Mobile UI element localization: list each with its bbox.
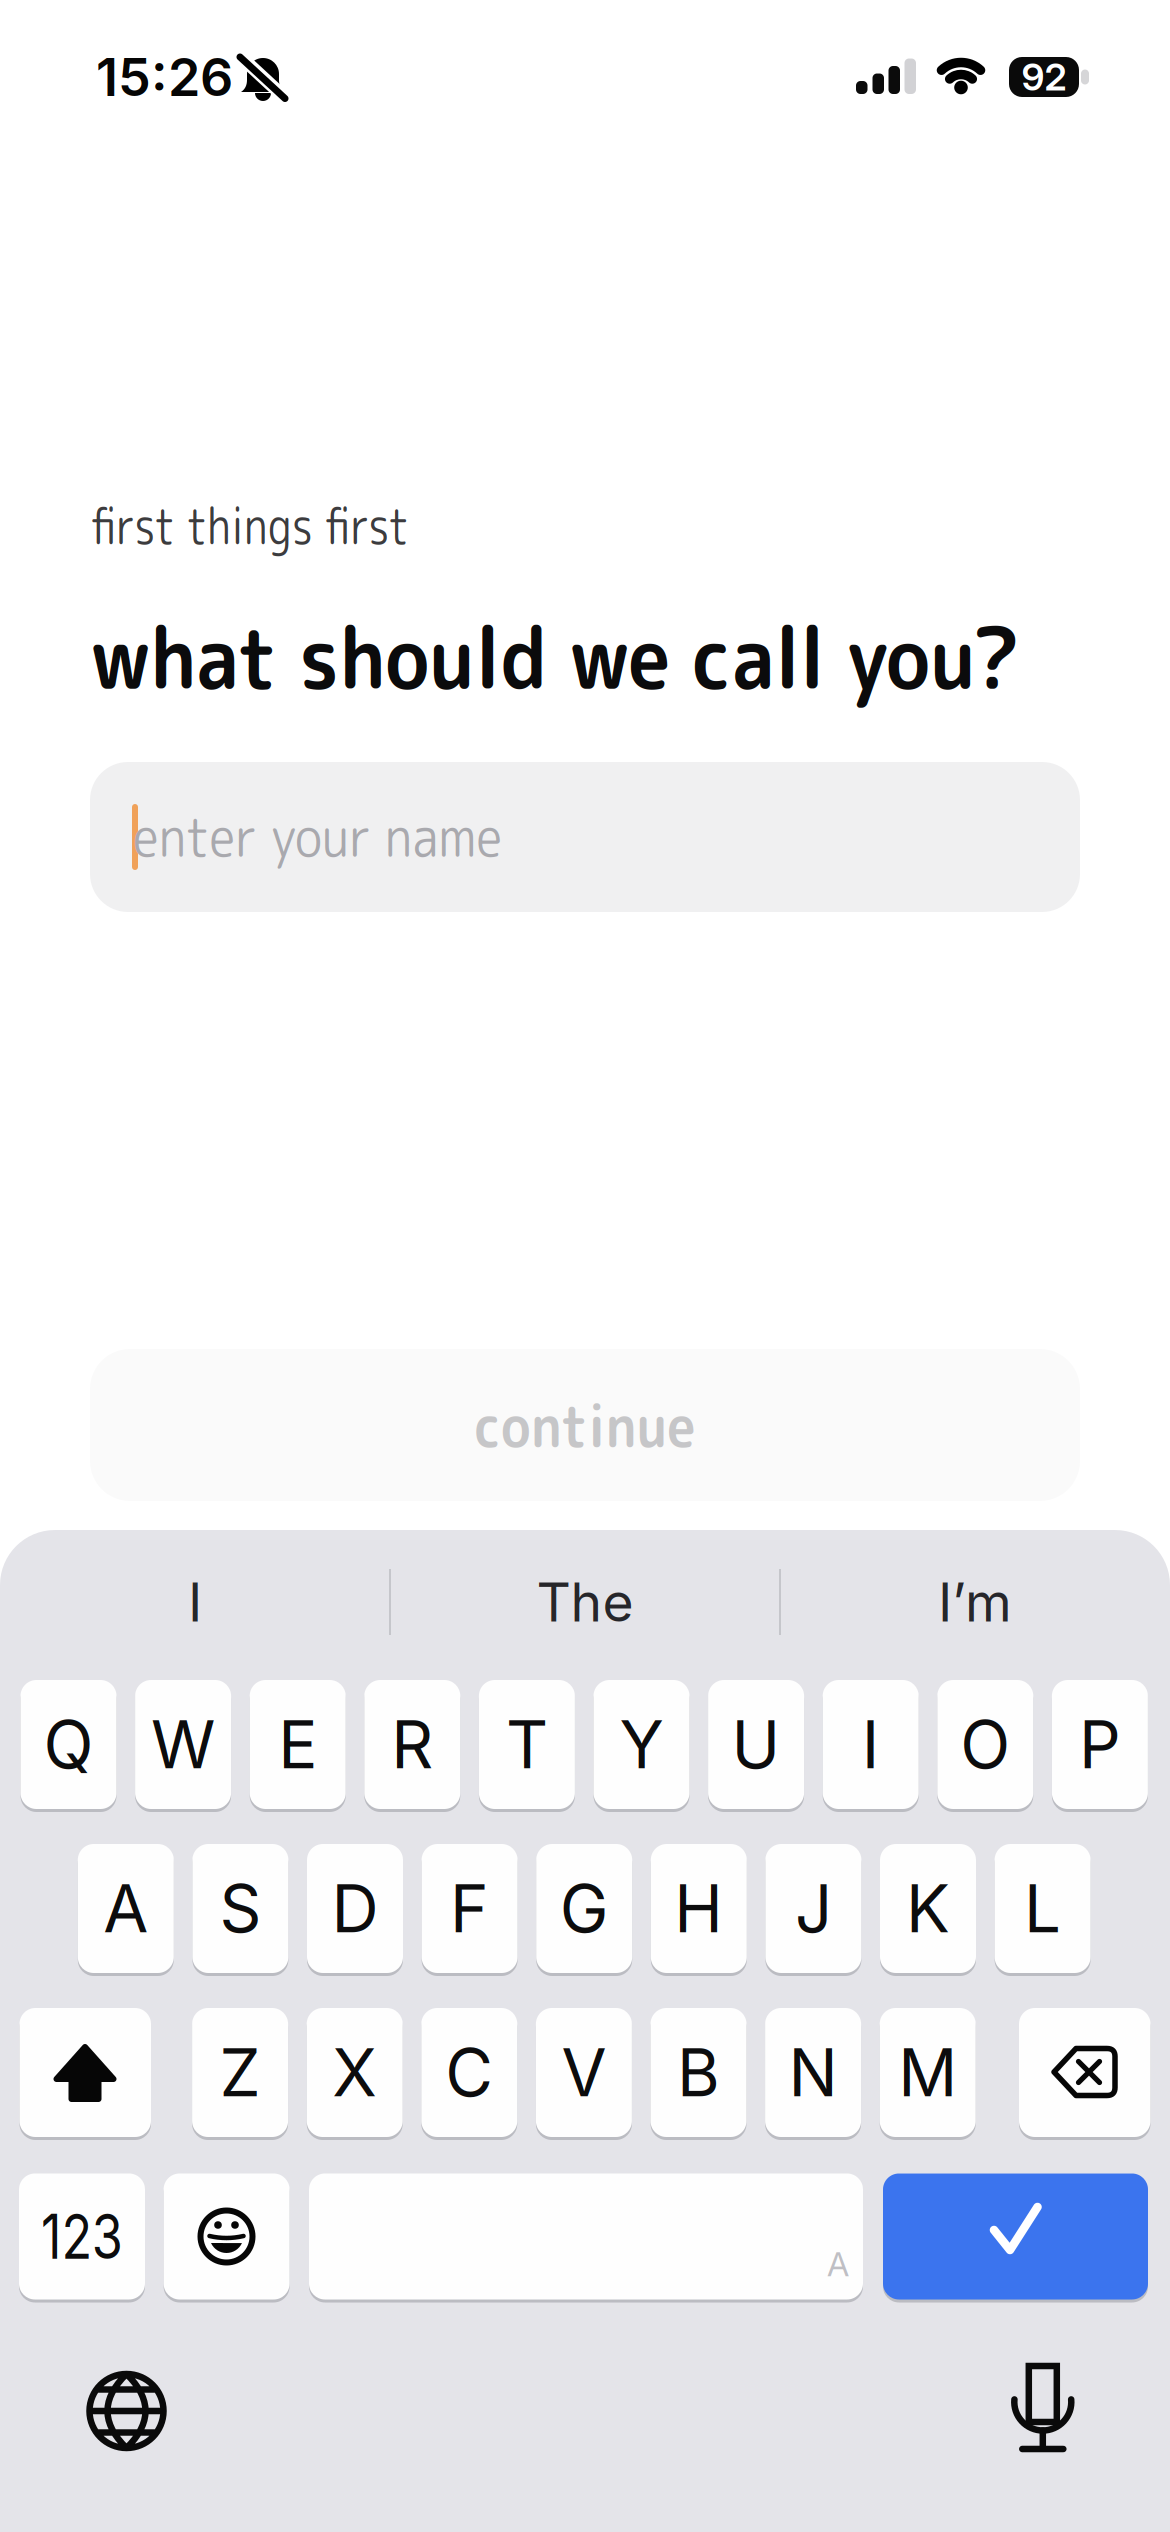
staticText: I (188, 1570, 202, 1634)
button[interactable]: R (364, 1680, 460, 1809)
button[interactable]: K (880, 1844, 976, 1973)
staticText: I’m (938, 1570, 1012, 1634)
button[interactable]: S (192, 1844, 288, 1973)
button[interactable]: D (307, 1844, 403, 1973)
staticText: T (506, 1705, 548, 1784)
staticText: N (789, 2033, 838, 2112)
staticText: A (827, 2244, 849, 2284)
staticText: V (561, 2033, 606, 2112)
button[interactable]: continue (90, 1349, 1080, 1501)
button[interactable]: I’m (790, 1542, 1160, 1662)
staticText: E (278, 1705, 317, 1784)
staticText: K (906, 1869, 950, 1948)
button[interactable]: I (823, 1680, 919, 1809)
staticText: B (677, 2033, 720, 2112)
staticText: H (674, 1869, 723, 1948)
staticText: C (445, 2033, 493, 2112)
button[interactable]: X (307, 2008, 403, 2137)
staticText: S (219, 1869, 261, 1948)
staticText: X (332, 2033, 377, 2112)
staticText: L (1024, 1869, 1061, 1948)
button[interactable]: G (536, 1844, 632, 1973)
staticText: Q (43, 1705, 93, 1784)
button[interactable]: I (10, 1542, 380, 1662)
staticText: G (560, 1869, 609, 1948)
button[interactable]: Numbers (19, 2173, 145, 2299)
staticText: Z (220, 2033, 261, 2112)
button[interactable]: Next keyboard (61, 2346, 191, 2476)
staticText: first things first (90, 490, 477, 560)
staticText: The (536, 1570, 633, 1634)
staticText: W (151, 1705, 215, 1784)
staticText: 123 (32, 2199, 132, 2274)
button[interactable]: Z (192, 2008, 288, 2137)
button[interactable]: C (421, 2008, 517, 2137)
staticText: M (898, 2033, 957, 2112)
button[interactable]: Emoji (164, 2173, 290, 2299)
staticText: J (795, 1869, 832, 1948)
button[interactable]: N (765, 2008, 861, 2137)
staticText: D (331, 1869, 378, 1948)
button[interactable]: Delete (1019, 2008, 1150, 2137)
button[interactable]: Space (309, 2173, 863, 2299)
staticText: I (862, 1705, 880, 1784)
button[interactable]: Y (593, 1680, 689, 1809)
button[interactable]: Shift (19, 2008, 151, 2137)
staticText: enter your name (133, 798, 548, 874)
button[interactable]: enter your name (90, 762, 1080, 912)
staticText: 15:26 (96, 45, 233, 108)
staticText: R (391, 1705, 433, 1784)
staticText: U (732, 1705, 781, 1784)
button[interactable]: Return (883, 2173, 1148, 2299)
staticText: what should we call you? (90, 598, 1107, 716)
staticText: continue (459, 1384, 710, 1466)
staticText: A (103, 1869, 148, 1948)
button[interactable]: V (536, 2008, 632, 2137)
button[interactable]: E (250, 1680, 346, 1809)
button[interactable]: F (422, 1844, 518, 1973)
button[interactable]: J (765, 1844, 861, 1973)
button[interactable]: The (400, 1542, 770, 1662)
button[interactable]: O (937, 1680, 1033, 1809)
button[interactable]: U (708, 1680, 804, 1809)
button[interactable]: W (135, 1680, 231, 1809)
staticText: P (1079, 1705, 1121, 1784)
button[interactable]: M (880, 2008, 976, 2137)
button[interactable]: A (78, 1844, 174, 1973)
staticText: Y (619, 1705, 663, 1784)
staticText: F (450, 1869, 489, 1948)
button[interactable]: P (1052, 1680, 1148, 1809)
button[interactable]: B (650, 2008, 746, 2137)
button[interactable]: L (995, 1844, 1091, 1973)
button[interactable]: Dictation (978, 2343, 1108, 2473)
button[interactable]: H (651, 1844, 747, 1973)
button[interactable]: Q (20, 1680, 116, 1809)
staticText: O (960, 1705, 1010, 1784)
button[interactable]: T (479, 1680, 575, 1809)
staticText: 92 (1021, 54, 1066, 100)
